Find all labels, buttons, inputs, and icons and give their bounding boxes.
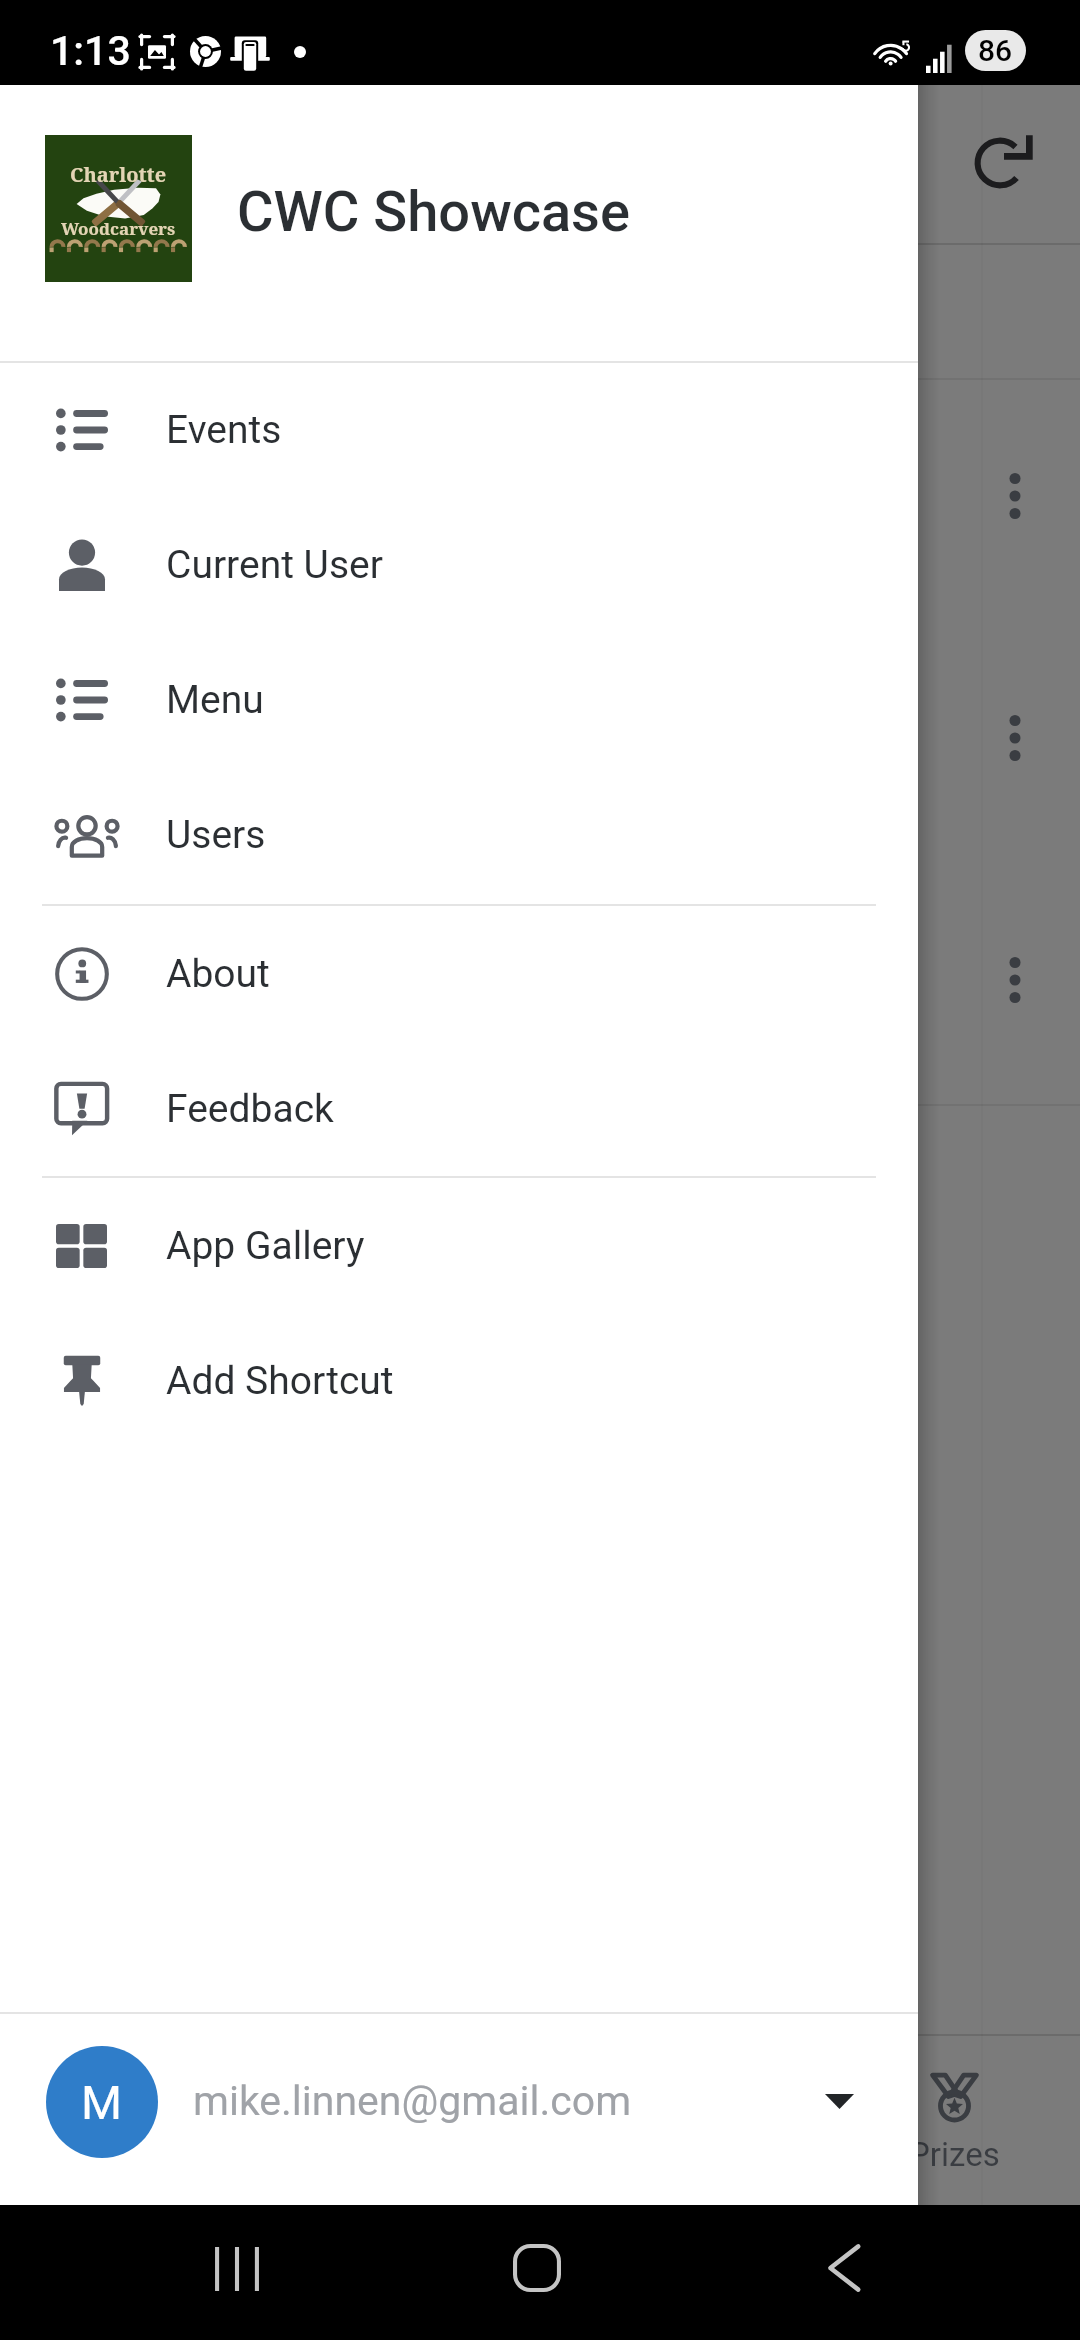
staticText: 86 bbox=[978, 33, 1013, 68]
staticText: Events bbox=[166, 407, 282, 453]
staticText: Add Shortcut bbox=[166, 1358, 394, 1404]
staticText: M bbox=[81, 2075, 123, 2130]
button[interactable]: Back bbox=[794, 2218, 894, 2318]
button[interactable]: More options bbox=[970, 935, 1060, 1025]
button[interactable]: Refresh bbox=[956, 115, 1052, 211]
button[interactable]: Events bbox=[0, 362, 918, 497]
staticText: Menu bbox=[166, 677, 264, 723]
button[interactable]: Recent apps bbox=[187, 2219, 287, 2319]
staticText: Prizes bbox=[909, 2135, 1000, 2174]
button[interactable]: Feedback bbox=[0, 1041, 918, 1176]
staticText: Feedback bbox=[166, 1086, 334, 1132]
button[interactable]: Users bbox=[0, 767, 918, 902]
button[interactable]: App Gallery bbox=[0, 1178, 918, 1313]
staticText: mike.linnen@gmail.com bbox=[193, 2077, 632, 2125]
button[interactable]: More options bbox=[970, 693, 1060, 783]
staticText: Charlotte bbox=[70, 161, 167, 188]
staticText: Users bbox=[166, 812, 266, 858]
button[interactable]: M bbox=[0, 2014, 918, 2193]
button[interactable]: Menu bbox=[0, 632, 918, 767]
staticText: About bbox=[166, 951, 270, 997]
staticText: App Gallery bbox=[166, 1223, 365, 1269]
button[interactable]: More options bbox=[970, 451, 1060, 541]
button[interactable]: Prizes bbox=[874, 2036, 1034, 2205]
staticText: 1:13 bbox=[50, 27, 131, 75]
button[interactable]: Home bbox=[487, 2218, 587, 2318]
button[interactable]: Add Shortcut bbox=[0, 1313, 918, 1448]
staticText: Woodcarvers bbox=[61, 217, 176, 240]
staticText: CWC Showcase bbox=[237, 179, 630, 245]
button[interactable]: About bbox=[0, 906, 918, 1041]
button[interactable]: Current User bbox=[0, 497, 918, 632]
staticText: Current User bbox=[166, 542, 383, 588]
